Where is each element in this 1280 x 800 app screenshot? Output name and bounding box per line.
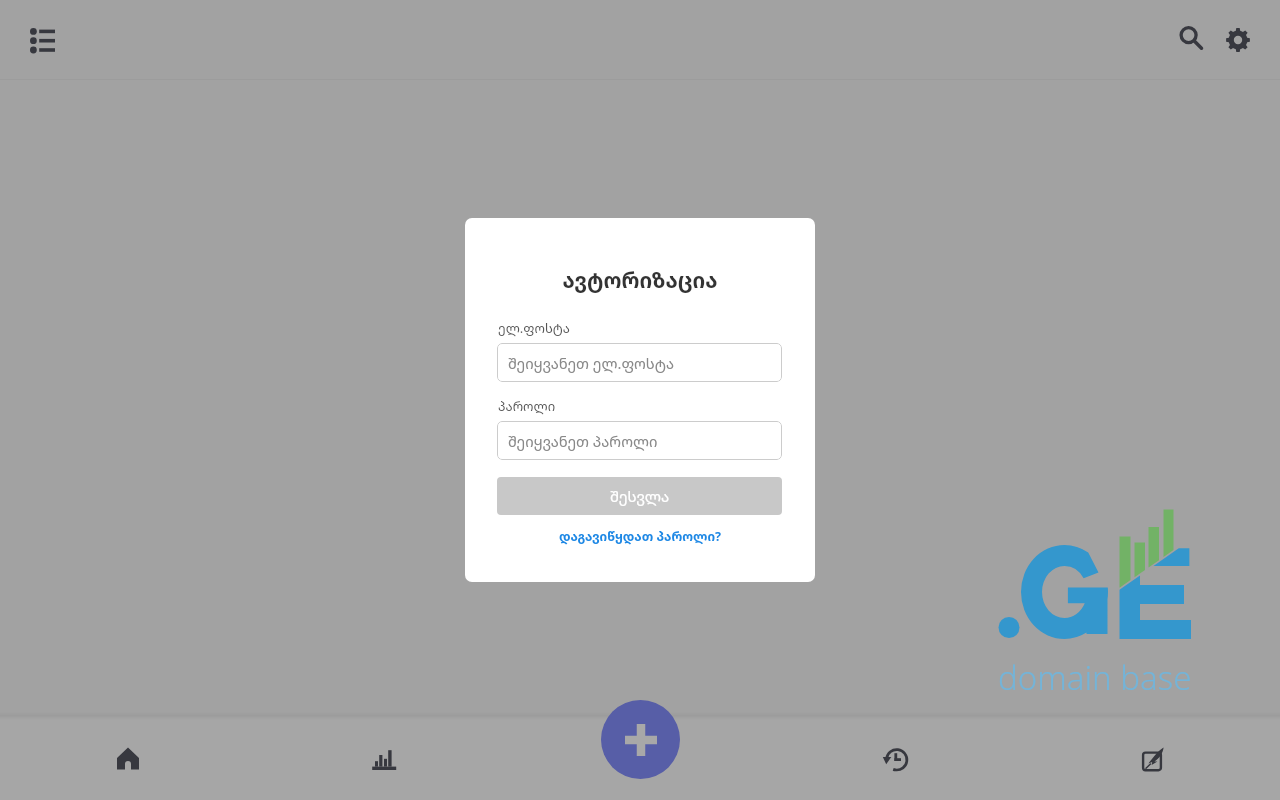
staticText: შეიყვანეთ ელ.ფოსტა [508, 353, 675, 373]
staticText: ავტორიზაცია [465, 266, 815, 295]
button[interactable]: Settings [1214, 16, 1262, 64]
button[interactable]: Statistics [256, 720, 512, 800]
button[interactable]: შეიყვანეთ ელ.ფოსტა [497, 343, 782, 382]
button[interactable]: History [768, 720, 1024, 800]
button[interactable]: Search [1168, 15, 1216, 63]
button[interactable]: Menu [18, 16, 66, 64]
staticText: დაგავიწყდათ პაროლი? [559, 528, 722, 545]
button[interactable]: დაგავიწყდათ პაროლი? [465, 528, 815, 545]
button[interactable]: Add [601, 700, 680, 779]
staticText: ელ.ფოსტა [498, 319, 570, 337]
staticText: შეიყვანეთ პაროლი [508, 431, 658, 451]
button[interactable]: Home [0, 720, 256, 800]
button[interactable]: შესვლა [497, 477, 782, 515]
button[interactable]: Compose [1024, 720, 1280, 800]
button[interactable]: შეიყვანეთ პაროლი [497, 421, 782, 460]
staticText: შესვლა [610, 486, 670, 506]
staticText: პაროლი [498, 397, 556, 415]
staticText: domain base [998, 655, 1192, 700]
